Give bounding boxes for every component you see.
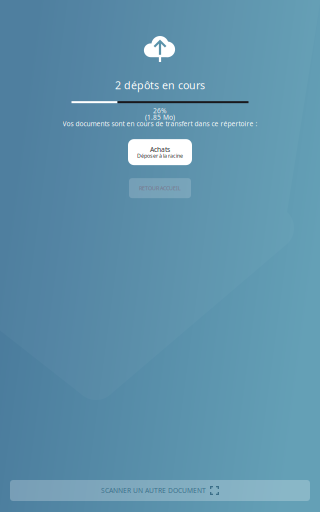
staticText: RETOUR ACCUEIL (139, 185, 181, 192)
button[interactable]: RETOUR ACCUEIL (129, 178, 191, 198)
staticText: Déposer à la racine (137, 152, 183, 159)
staticText: Vos documents sont en cours de transfert… (62, 119, 257, 128)
staticText: (1.85 Mo) (145, 113, 175, 122)
staticText: 26% (153, 106, 167, 115)
staticText: SCANNER UN AUTRE DOCUMENT (101, 486, 206, 495)
staticText: Achats (150, 145, 170, 154)
staticText: 2 dépôts en cours (115, 78, 205, 92)
button[interactable]: SCANNER UN AUTRE DOCUMENT (10, 480, 310, 501)
